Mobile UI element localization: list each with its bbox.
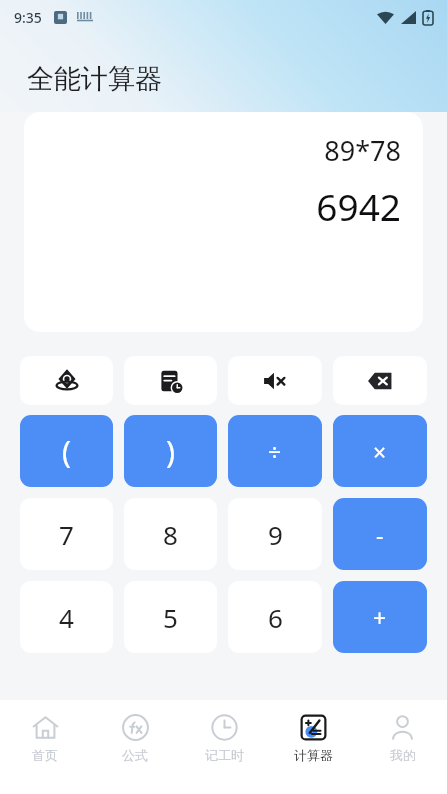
staticText: ) — [166, 431, 175, 472]
staticText: 9:35 — [14, 8, 42, 27]
staticText: 6942 — [316, 181, 401, 231]
staticText: 89*78 — [324, 132, 401, 169]
staticText: ( — [62, 431, 71, 472]
button[interactable]: 4 — [20, 581, 113, 653]
staticText: 5 — [163, 600, 178, 635]
staticText: 我的 — [390, 747, 416, 763]
button[interactable]: History — [124, 356, 217, 405]
staticText: 8 — [163, 517, 178, 552]
button[interactable]: Scientific mode — [20, 356, 113, 405]
staticText: 公式 — [122, 747, 148, 763]
button[interactable]: 首页 — [0, 700, 90, 794]
button[interactable]: 计算器 — [269, 700, 358, 794]
button[interactable]: ÷ — [228, 415, 322, 487]
button[interactable]: × — [333, 415, 427, 487]
staticText: 首页 — [32, 747, 58, 763]
button[interactable]: 9 — [228, 498, 322, 570]
button[interactable]: 记工时 — [180, 700, 269, 794]
staticText: × — [373, 436, 387, 467]
staticText: ÷ — [268, 436, 282, 467]
staticText: 全能计算器 — [27, 62, 162, 96]
staticText: 4 — [59, 600, 74, 635]
button[interactable]: 8 — [124, 498, 217, 570]
button[interactable]: + — [333, 581, 427, 653]
button[interactable]: 89*78 — [24, 112, 423, 332]
staticText: 6 — [268, 600, 283, 635]
button[interactable]: ( — [20, 415, 113, 487]
staticText: 7 — [59, 517, 74, 552]
button[interactable]: 5 — [124, 581, 217, 653]
staticText: 9 — [268, 517, 283, 552]
button[interactable]: Mute — [228, 356, 322, 405]
button[interactable]: 6 — [228, 581, 322, 653]
staticText: 记工时 — [205, 747, 244, 763]
button[interactable]: Backspace — [333, 356, 427, 405]
button[interactable]: 我的 — [358, 700, 447, 794]
button[interactable]: 公式 — [90, 700, 180, 794]
button[interactable]: 7 — [20, 498, 113, 570]
staticText: 计算器 — [294, 747, 333, 763]
staticText: + — [373, 602, 387, 633]
staticText: - — [376, 519, 384, 550]
button[interactable]: ) — [124, 415, 217, 487]
button[interactable]: - — [333, 498, 427, 570]
